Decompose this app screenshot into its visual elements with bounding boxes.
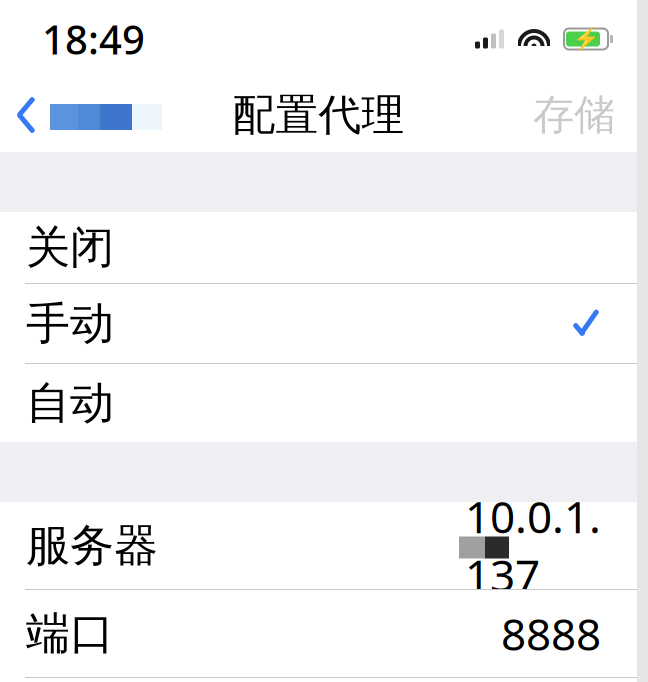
staticText: 8888 xyxy=(501,604,601,663)
button[interactable]: Back xyxy=(0,78,162,152)
staticText: 端口 xyxy=(26,606,114,660)
staticText: 10.0.1.137 xyxy=(465,487,601,604)
staticText: 手动 xyxy=(26,296,114,350)
staticText: 配置代理 xyxy=(232,89,404,141)
staticText: 关闭 xyxy=(26,220,114,274)
staticText: 存储 xyxy=(533,90,615,140)
staticText: 自动 xyxy=(26,376,114,430)
button[interactable]: 存储 xyxy=(533,78,637,152)
button[interactable]: 关闭 xyxy=(0,212,637,283)
staticText: ⚡ xyxy=(572,27,599,51)
staticText: 服务器 xyxy=(26,518,158,572)
button[interactable]: 手动 xyxy=(0,284,637,363)
button[interactable]: 端口 xyxy=(0,590,637,677)
staticText: 18:49 xyxy=(42,12,145,65)
button[interactable]: 自动 xyxy=(0,364,637,442)
button[interactable]: 服务器 xyxy=(0,502,637,589)
